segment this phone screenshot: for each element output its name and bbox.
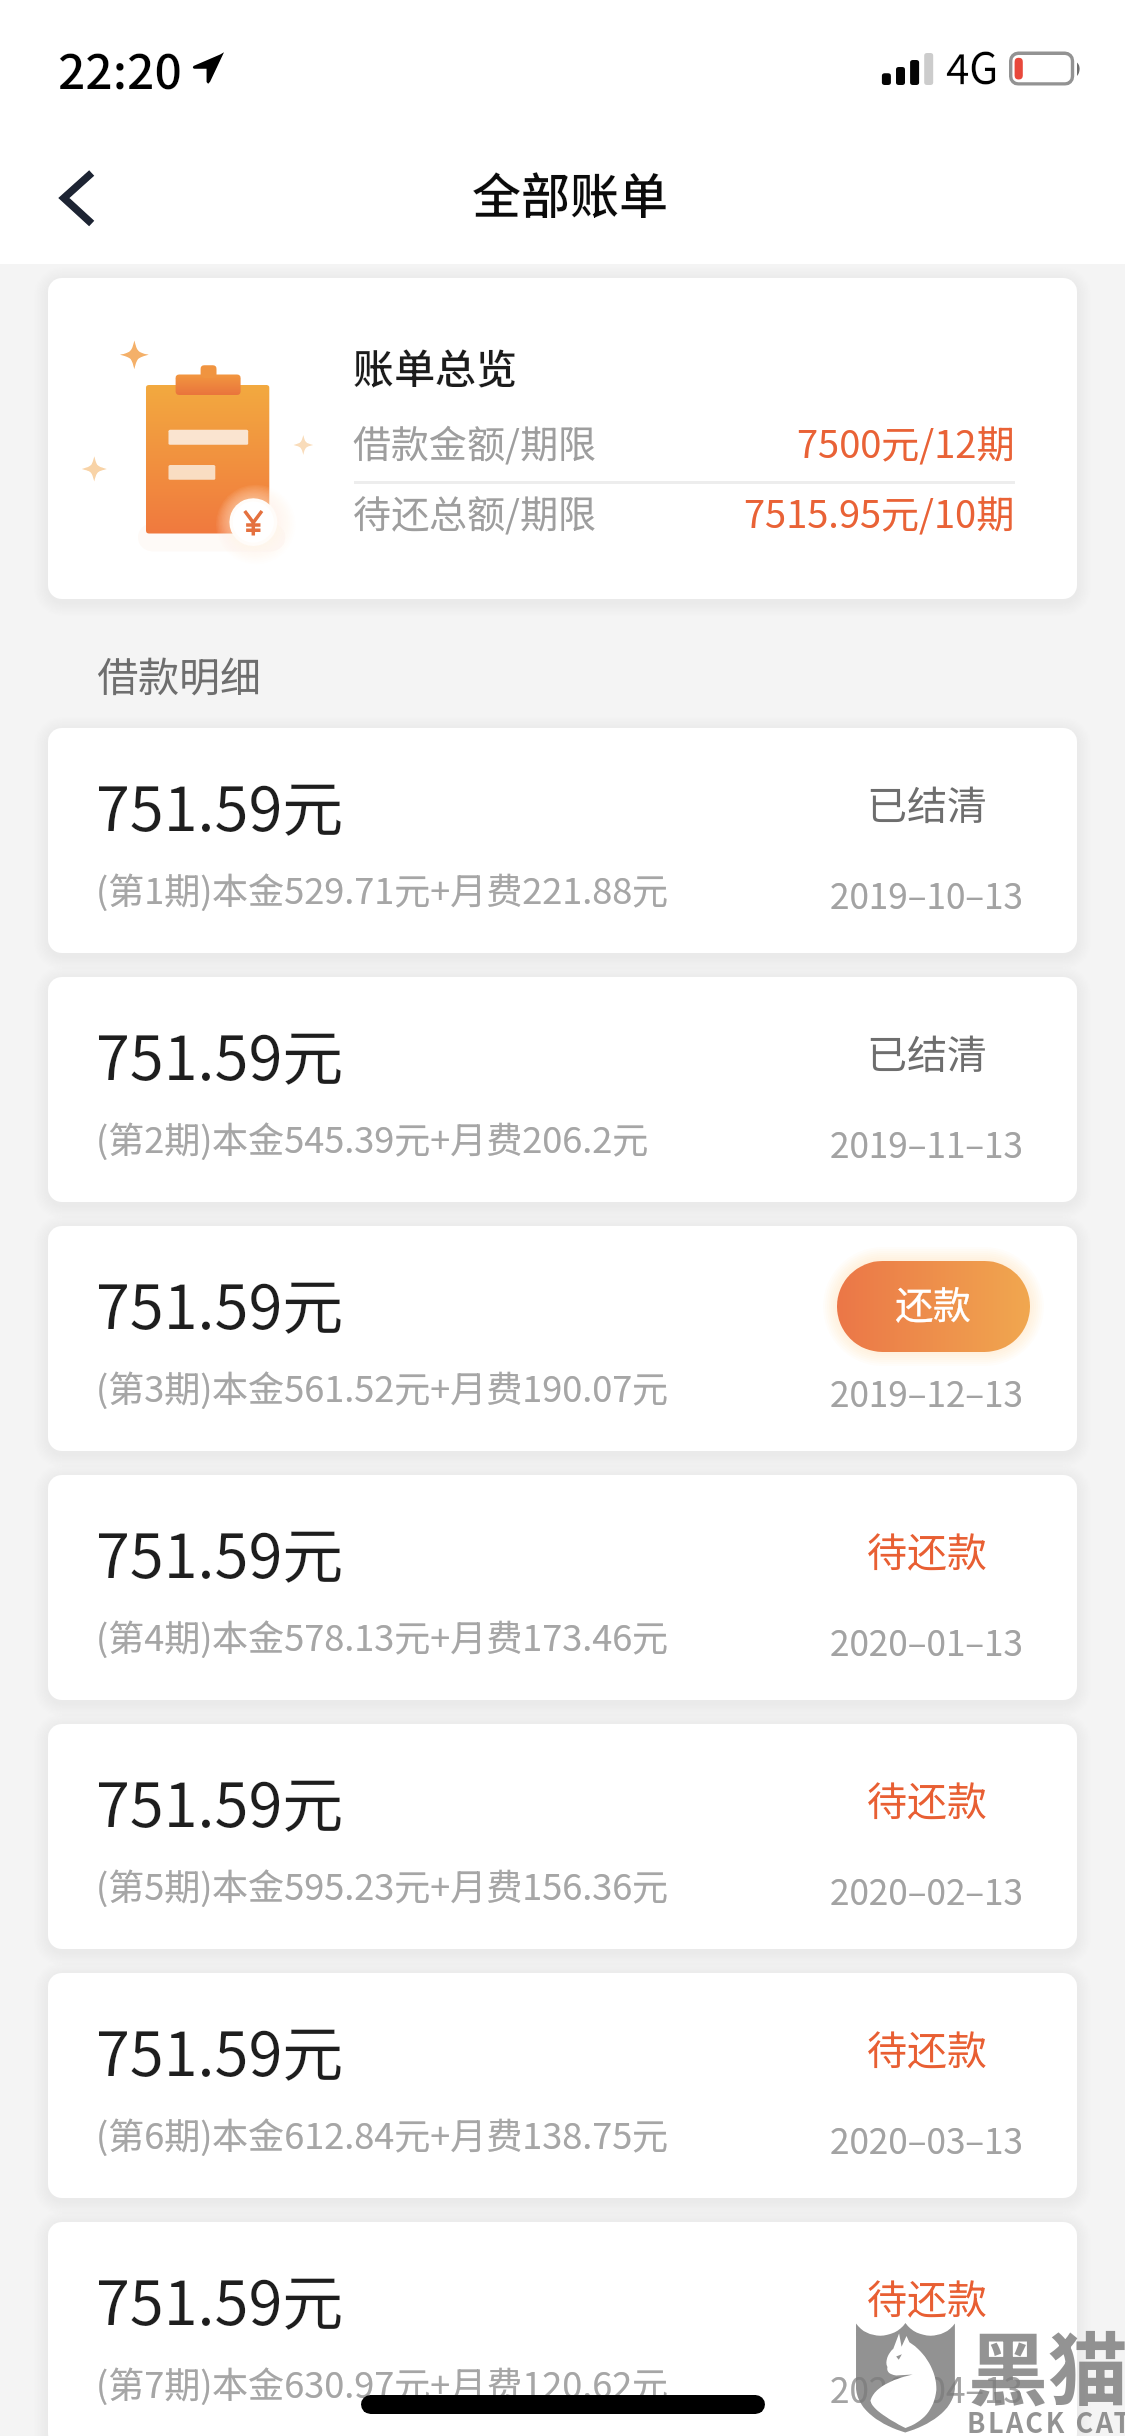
staticText: 还款	[895, 1275, 972, 1330]
staticText: 2019–10–13	[830, 868, 1023, 919]
button[interactable]: Back	[20, 156, 132, 240]
staticText: 751.59元	[96, 1756, 344, 1844]
staticText: 已结清	[867, 1023, 987, 1081]
staticText: 全部账单	[472, 157, 669, 228]
staticText: 黑猫	[968, 2306, 1125, 2422]
staticText: (第1期)本金529.71元+月费221.88元	[96, 862, 669, 914]
staticText: 751.59元	[96, 760, 344, 848]
staticText: (第4期)本金578.13元+月费173.46元	[96, 1609, 669, 1661]
staticText: 751.59元	[96, 2005, 344, 2093]
staticText: 借款明细	[97, 644, 261, 703]
staticText: 2020–03–13	[830, 2113, 1023, 2164]
staticText: 22:20	[58, 33, 182, 103]
button[interactable]: 751.59元	[48, 977, 1077, 1202]
staticText: 751.59元	[96, 1009, 344, 1097]
staticText: 待还款	[867, 1521, 987, 1579]
staticText: BLACK CAT	[967, 2402, 1125, 2436]
staticText: (第2期)本金545.39元+月费206.2元	[96, 1111, 649, 1163]
staticText: 7500元/12期	[797, 414, 1015, 469]
staticText: 2020–04–13	[830, 2362, 1023, 2413]
staticText: 待还款	[867, 1770, 987, 1828]
staticText: 待还款	[867, 2019, 987, 2077]
button[interactable]: 账单总览	[48, 278, 1077, 599]
staticText: 已结清	[867, 774, 987, 832]
staticText: 4G	[946, 35, 999, 96]
staticText: (第5期)本金595.23元+月费156.36元	[96, 1858, 669, 1910]
button[interactable]: 751.59元	[48, 1226, 1077, 1451]
button[interactable]: 还款	[837, 1261, 1030, 1352]
staticText: 2020–02–13	[830, 1864, 1023, 1915]
staticText: 借款金额/期限	[353, 414, 596, 469]
staticText: 751.59元	[96, 2254, 344, 2342]
button[interactable]: 751.59元	[48, 1973, 1077, 2198]
staticText: 待还款	[867, 2268, 987, 2326]
staticText: 待还总额/期限	[353, 484, 596, 539]
staticText: 7515.95元/10期	[744, 484, 1015, 539]
button[interactable]: 751.59元	[48, 1724, 1077, 1949]
staticText: 2019–11–13	[830, 1117, 1023, 1168]
staticText: 账单总览	[353, 336, 517, 395]
staticText: (第6期)本金612.84元+月费138.75元	[96, 2107, 669, 2159]
staticText: (第3期)本金561.52元+月费190.07元	[96, 1360, 669, 1412]
button[interactable]: 751.59元	[48, 2222, 1077, 2436]
staticText: (第7期)本金630.97元+月费120.62元	[96, 2356, 669, 2408]
button[interactable]: 751.59元	[48, 728, 1077, 953]
button[interactable]: 751.59元	[48, 1475, 1077, 1700]
staticText: 751.59元	[96, 1258, 344, 1346]
staticText: 751.59元	[96, 1507, 344, 1595]
staticText: 2019–12–13	[830, 1366, 1023, 1417]
staticText: 2020–01–13	[830, 1615, 1023, 1666]
